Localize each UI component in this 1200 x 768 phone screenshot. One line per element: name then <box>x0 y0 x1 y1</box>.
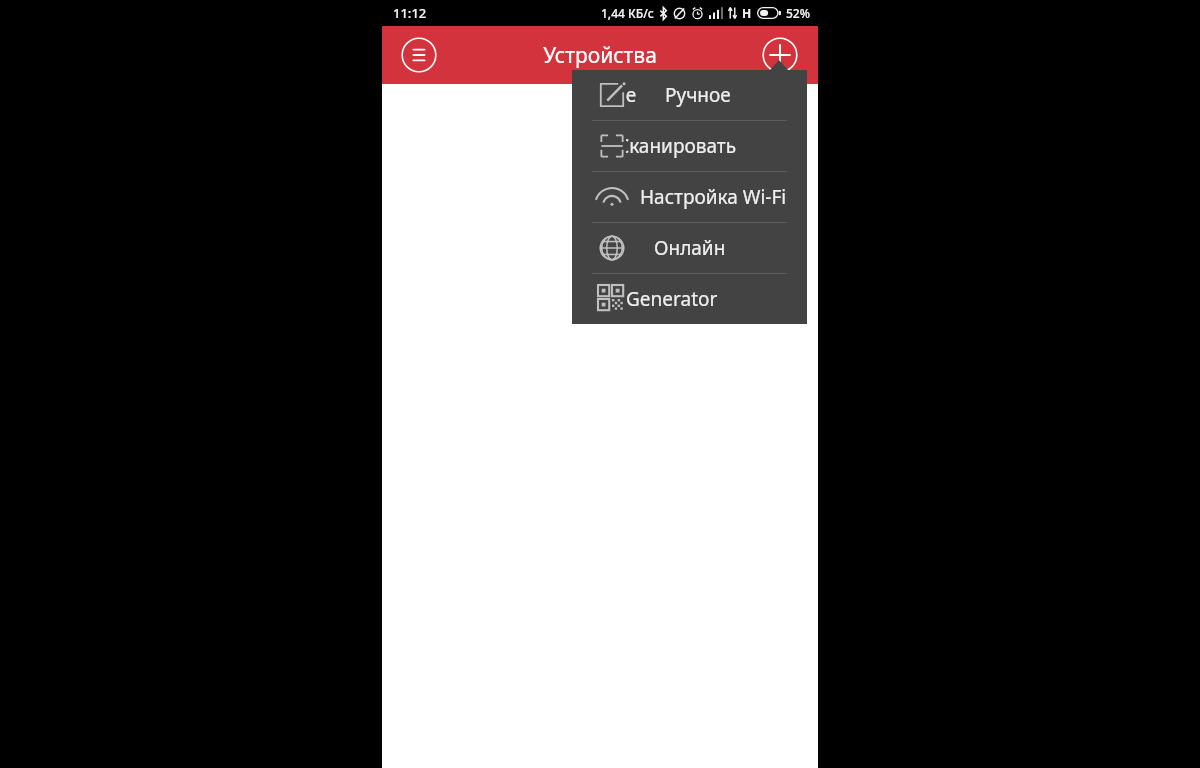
staticText: Настройка Wi-Fi <box>640 184 787 210</box>
button[interactable]: Add device <box>760 35 800 75</box>
staticText: 52% <box>786 5 810 21</box>
staticText: Generator <box>626 286 718 312</box>
button[interactable]: Настройка Wi-Fi <box>572 172 807 222</box>
button[interactable]: Устройства <box>572 223 807 273</box>
button[interactable]: Open navigation menu <box>399 35 439 75</box>
staticText: H <box>742 5 752 21</box>
staticText: Добавление <box>626 82 637 108</box>
staticText: 1,44 КБ/с <box>601 5 654 21</box>
button[interactable]: Добавление <box>572 70 807 120</box>
staticText: Ручное <box>665 82 731 108</box>
staticText: Сканировать <box>626 133 737 159</box>
staticText: Устройства <box>543 41 657 70</box>
button[interactable]: QR-код <box>572 121 807 171</box>
button[interactable]: QR code <box>572 274 807 324</box>
staticText: 11:12 <box>393 4 427 22</box>
staticText: Онлайн <box>654 235 726 261</box>
